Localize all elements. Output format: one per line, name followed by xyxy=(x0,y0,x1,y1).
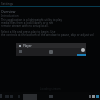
staticText: This application is a lightweight utilit… xyxy=(1,18,62,28)
staticText: Player xyxy=(23,44,32,48)
staticText: Settings xyxy=(1,2,14,6)
staticText: Overview xyxy=(1,9,16,13)
staticText: Loading stream xyxy=(40,87,61,91)
staticText: Introduction xyxy=(1,14,19,18)
button[interactable]: Open file xyxy=(49,50,53,54)
staticText: Select a file and press play to begin. U… xyxy=(1,30,94,37)
